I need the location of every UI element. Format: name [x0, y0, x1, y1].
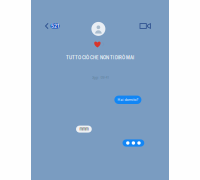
button[interactable]: FaceTime video call	[138, 20, 152, 31]
button[interactable]: Back to conversations	[45, 20, 65, 31]
staticText: Oggi 09:41	[91, 76, 108, 79]
button[interactable]: Contact info	[78, 22, 118, 50]
staticText: mmm	[79, 127, 88, 131]
staticText: 521	[51, 23, 59, 29]
staticText: Hai dormito?	[117, 98, 138, 102]
staticText: TUTTO CIÒ CHE NON TI DIRÒ MAI	[66, 55, 134, 60]
